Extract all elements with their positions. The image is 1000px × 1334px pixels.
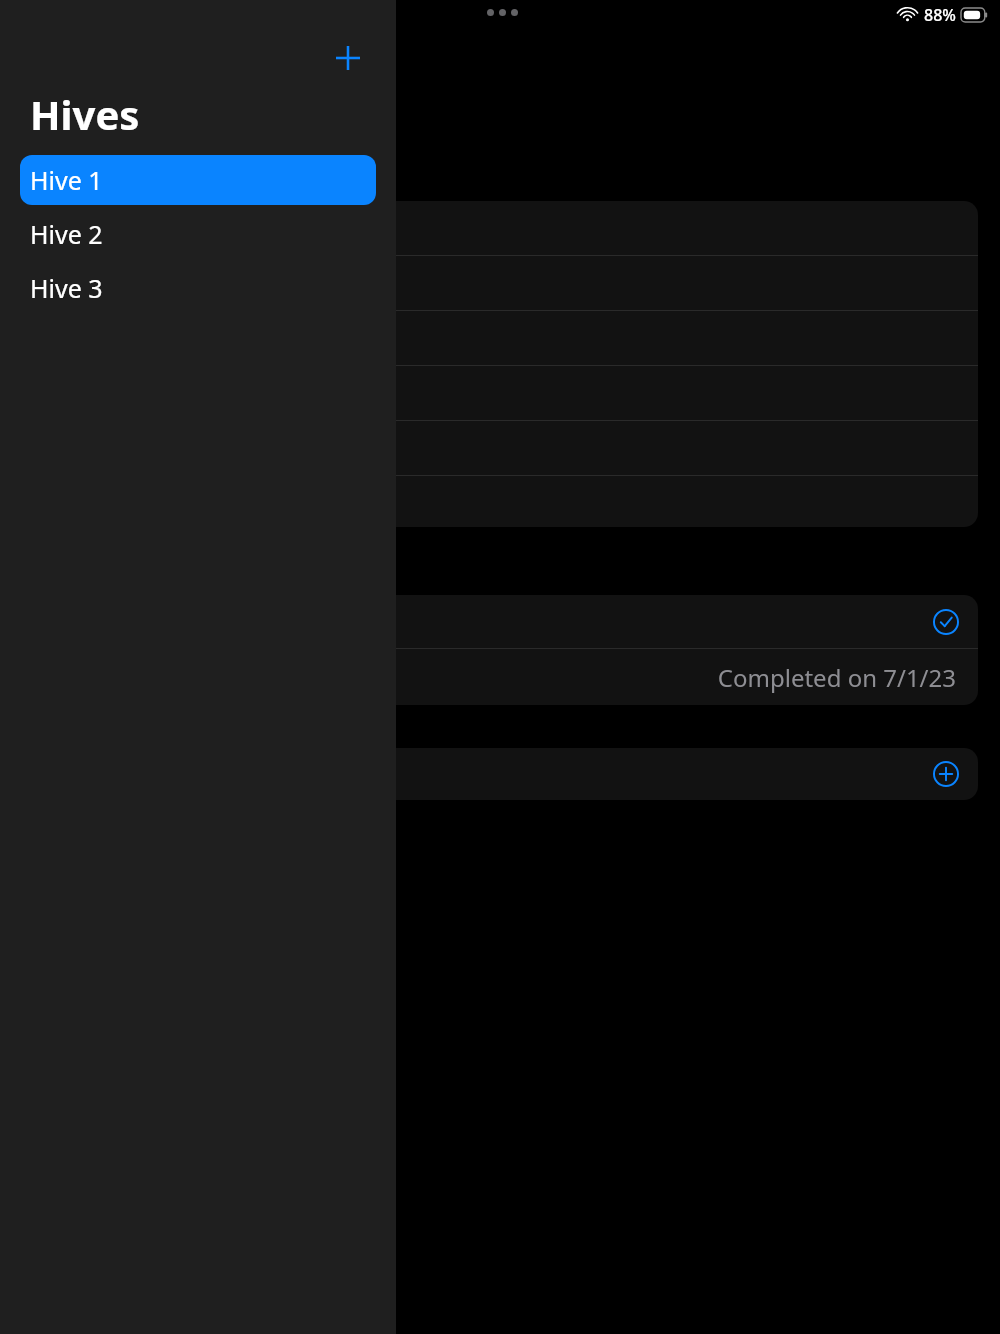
other: Completed bbox=[933, 609, 959, 635]
staticText: Hive 3 bbox=[30, 271, 103, 305]
button[interactable] bbox=[0, 476, 978, 527]
button[interactable]: Add hive bbox=[333, 43, 363, 73]
button[interactable]: Completed bbox=[0, 595, 978, 648]
button[interactable] bbox=[0, 311, 978, 365]
staticText: Hive 1 bbox=[30, 163, 103, 197]
staticText: Completed on 7/1/23 bbox=[717, 661, 956, 694]
other: Add item bbox=[933, 761, 959, 787]
button[interactable]: Add item bbox=[0, 748, 978, 800]
button[interactable] bbox=[0, 366, 978, 420]
button[interactable] bbox=[0, 256, 978, 310]
button[interactable]: Completed on 7/1/23 bbox=[0, 649, 978, 705]
staticText: 88% bbox=[924, 4, 956, 26]
button[interactable]: Hive 3 bbox=[20, 263, 376, 313]
button[interactable] bbox=[0, 421, 978, 475]
button[interactable] bbox=[0, 201, 978, 255]
button[interactable]: Hive 2 bbox=[20, 209, 376, 259]
staticText: Hive 2 bbox=[30, 217, 103, 251]
staticText: Hives bbox=[30, 87, 140, 141]
button[interactable]: Hive 1 bbox=[20, 155, 376, 205]
